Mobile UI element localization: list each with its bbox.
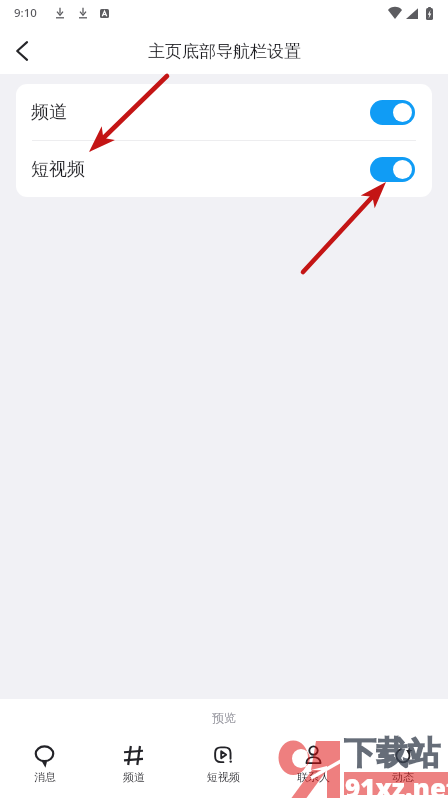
staticText: 预览 bbox=[0, 710, 448, 725]
button[interactable]: Toggle bbox=[370, 100, 415, 125]
staticText: 9:10 bbox=[14, 5, 37, 21]
staticText: 短视频 bbox=[207, 770, 240, 784]
staticText: 频道 bbox=[31, 101, 67, 124]
staticText: 动态 bbox=[392, 770, 414, 784]
button[interactable]: 频道 bbox=[16, 84, 432, 140]
staticText: 频道 bbox=[123, 770, 145, 784]
staticText: 联系人 bbox=[297, 770, 330, 784]
staticText: 短视频 bbox=[31, 158, 85, 181]
staticText: 主页底部导航栏设置 bbox=[148, 41, 301, 62]
button[interactable]: 消息 bbox=[0, 746, 89, 784]
button[interactable]: 短视频 bbox=[178, 746, 268, 784]
button[interactable]: Toggle bbox=[370, 157, 415, 182]
staticText: 下载站 bbox=[344, 733, 440, 773]
button[interactable]: 联系人 bbox=[268, 746, 358, 784]
button[interactable]: Back bbox=[0, 29, 44, 73]
staticText: 91xz.net bbox=[345, 770, 448, 798]
button[interactable]: 频道 bbox=[89, 746, 178, 784]
button[interactable]: 动态 bbox=[358, 746, 448, 784]
button[interactable]: 短视频 bbox=[16, 141, 432, 197]
staticText: 消息 bbox=[34, 770, 56, 784]
